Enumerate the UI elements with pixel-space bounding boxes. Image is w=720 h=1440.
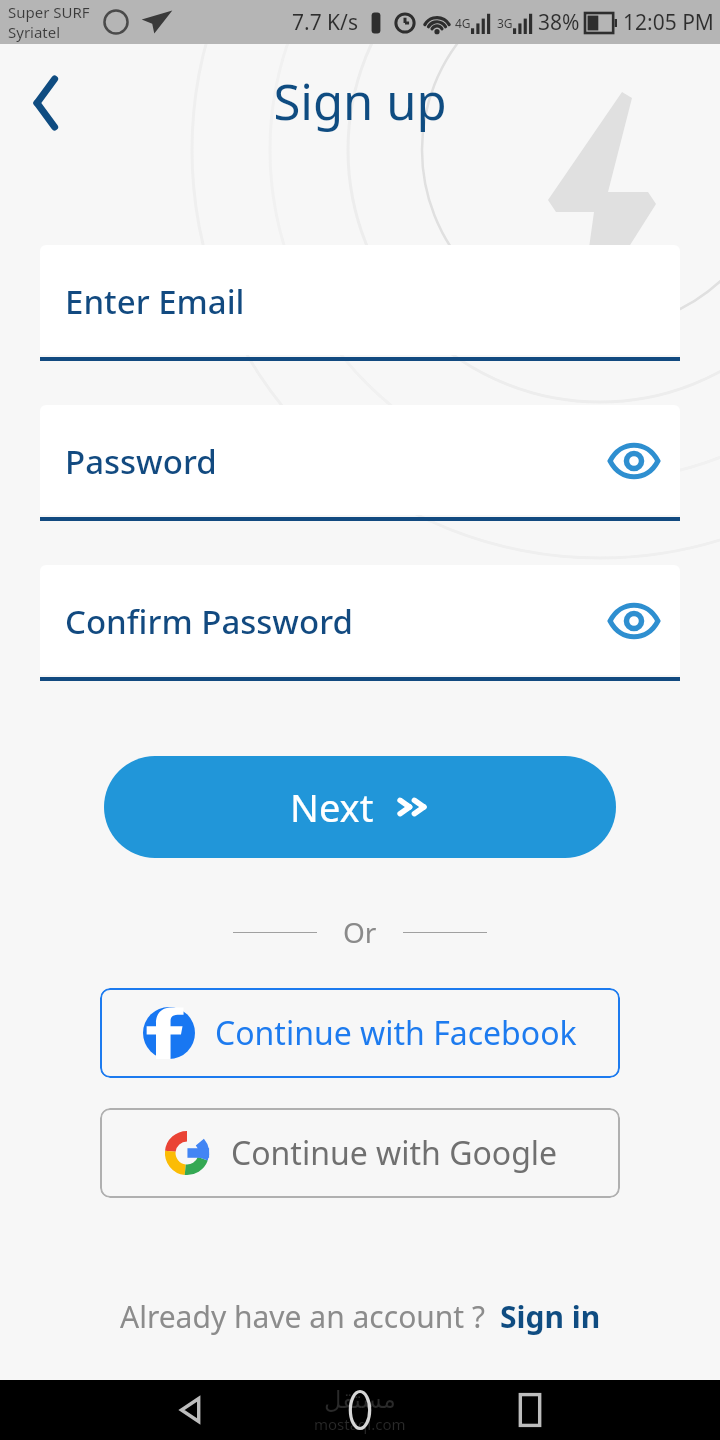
button[interactable]: Sign in [486,1296,601,1337]
staticText: 12:05 PM [623,8,714,37]
staticText: mostaql.com [314,1414,406,1434]
button[interactable]: Next [104,756,616,858]
button[interactable]: Back [10,68,80,138]
staticText: Continue with Google [231,1131,558,1175]
staticText: مستقل [324,1386,396,1414]
button[interactable]: Show password [608,435,660,487]
staticText: 7.7 K/s [292,8,358,37]
button[interactable]: Enter Email [40,245,680,361]
staticText: Syriatel [8,22,61,42]
staticText: Already have an account ? [120,1296,486,1337]
staticText: Or [343,913,377,951]
staticText: Sign in [500,1296,601,1337]
button[interactable]: Back [168,1386,216,1434]
staticText: Confirm Password [65,599,353,644]
button[interactable]: Password [40,405,680,521]
staticText: Next [290,781,374,833]
button[interactable]: Continue with Google [100,1108,620,1198]
staticText: 4G [455,15,471,31]
staticText: Continue with Facebook [215,1011,577,1055]
staticText: Password [65,439,217,484]
button[interactable]: Show password [608,595,660,647]
staticText: Sign up [0,68,720,135]
button[interactable]: Confirm Password [40,565,680,681]
staticText: 38% [538,8,580,37]
staticText: Enter Email [65,279,245,324]
button[interactable]: Continue with Facebook [100,988,620,1078]
staticText: 3G [497,15,513,31]
button[interactable]: Recents [508,1388,552,1432]
staticText: Super SURF [8,2,90,22]
button[interactable]: Home [338,1388,382,1432]
